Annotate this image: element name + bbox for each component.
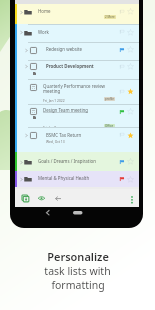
staticText: 2 More (105, 15, 115, 19)
staticText: Wed, Oct 13 (46, 139, 65, 143)
staticText: profile (105, 97, 114, 101)
staticText: Home (38, 8, 51, 14)
button[interactable]: More options (128, 192, 138, 202)
staticText: Fri, Jan 8 (43, 125, 57, 129)
staticText: Personalize (47, 249, 109, 264)
button[interactable]: Home (15, 4, 139, 24)
button[interactable]: Preview (35, 192, 47, 204)
staticText: Design Team meeting (43, 107, 88, 113)
staticText: task lists with (44, 264, 111, 278)
staticText: Goals / Dreams / Inspiration (38, 158, 96, 164)
button[interactable]: BSMC Tax Return (15, 127, 139, 152)
staticText: Office (105, 124, 114, 128)
staticText: Quarterly Performance review meeting (43, 83, 117, 95)
button[interactable]: Quarterly Performance review meeting (15, 79, 139, 104)
staticText: Work (38, 29, 49, 35)
button[interactable]: Redesign website (15, 42, 139, 60)
staticText: Product Development (46, 63, 94, 69)
button[interactable]: Product Development (15, 60, 139, 79)
staticText: Fri, Jan 1 2022 (43, 98, 65, 102)
button[interactable]: Goals / Dreams / Inspiration (15, 152, 139, 171)
staticText: Mental & Physical Health (38, 175, 90, 181)
button[interactable]: Add note (19, 192, 31, 204)
staticText: BSMC Tax Return (46, 132, 82, 138)
button[interactable]: Mental & Physical Health (15, 171, 139, 187)
button[interactable]: Work (15, 24, 139, 42)
staticText: Redesign website (46, 46, 83, 52)
button[interactable]: Back (52, 192, 64, 204)
button[interactable]: Design Team meeting (15, 104, 139, 127)
staticText: formatting (51, 278, 105, 292)
